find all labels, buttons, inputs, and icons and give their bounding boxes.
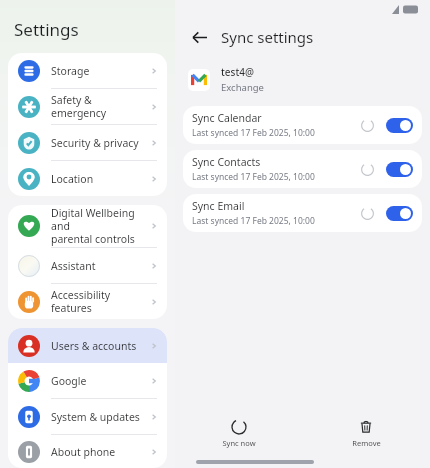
button[interactable]: Sync Calendar — [183, 106, 422, 144]
staticText: Sync Calendar — [192, 111, 262, 125]
staticText: Remove — [352, 438, 381, 448]
button[interactable]: Users & accounts — [8, 328, 167, 363]
staticText: About phone — [51, 445, 149, 459]
button[interactable]: Security & privacy — [8, 125, 167, 160]
staticText: Exchange — [221, 81, 264, 94]
staticText: Sync now — [222, 438, 256, 448]
staticText: Last synced 17 Feb 2025, 10:00 — [192, 171, 315, 183]
button[interactable]: Location — [8, 161, 167, 196]
staticText: Storage — [51, 64, 149, 78]
staticText: Users & accounts — [51, 339, 149, 353]
button[interactable]: test4@ — [175, 63, 430, 96]
staticText: Assistant — [51, 259, 149, 273]
button[interactable]: Safety & emergency — [8, 89, 167, 124]
staticText: Settings — [14, 18, 79, 41]
button[interactable]: Accessibility features — [8, 284, 167, 319]
button[interactable]: Back — [187, 25, 211, 49]
button[interactable]: Google — [8, 363, 167, 398]
staticText: Last synced 17 Feb 2025, 10:00 — [192, 127, 315, 139]
button[interactable]: Storage — [8, 53, 167, 88]
staticText: Last synced 17 Feb 2025, 10:00 — [192, 215, 315, 227]
staticText: Digital Wellbeing and parental controls — [51, 206, 149, 246]
button[interactable]: Sync Contacts — [183, 150, 422, 188]
button[interactable]: Sync Contacts toggle — [386, 162, 413, 177]
staticText: Accessibility features — [51, 288, 149, 315]
staticText: Location — [51, 172, 149, 186]
button[interactable]: Sync Calendar toggle — [386, 118, 413, 133]
other: Syncing — [361, 163, 374, 176]
button[interactable]: Assistant — [8, 248, 167, 283]
staticText: Sync Email — [192, 199, 245, 213]
other: Syncing — [361, 207, 374, 220]
button[interactable]: Sync Email — [183, 194, 422, 232]
staticText: Security & privacy — [51, 136, 149, 150]
staticText: Safety & emergency — [51, 93, 149, 120]
button[interactable]: Sync now — [175, 410, 302, 456]
button[interactable]: Digital Wellbeing and parental controls — [8, 205, 167, 247]
staticText: System & updates — [51, 410, 149, 424]
staticText: test4@ — [221, 65, 254, 79]
staticText: Sync Contacts — [192, 155, 261, 169]
button[interactable]: System & updates — [8, 399, 167, 434]
button[interactable]: Sync Email toggle — [386, 206, 413, 221]
button[interactable]: Remove — [302, 410, 430, 456]
other: Syncing — [361, 119, 374, 132]
button[interactable]: About phone — [8, 435, 167, 468]
staticText: Sync settings — [221, 27, 314, 47]
staticText: Google — [51, 374, 149, 388]
